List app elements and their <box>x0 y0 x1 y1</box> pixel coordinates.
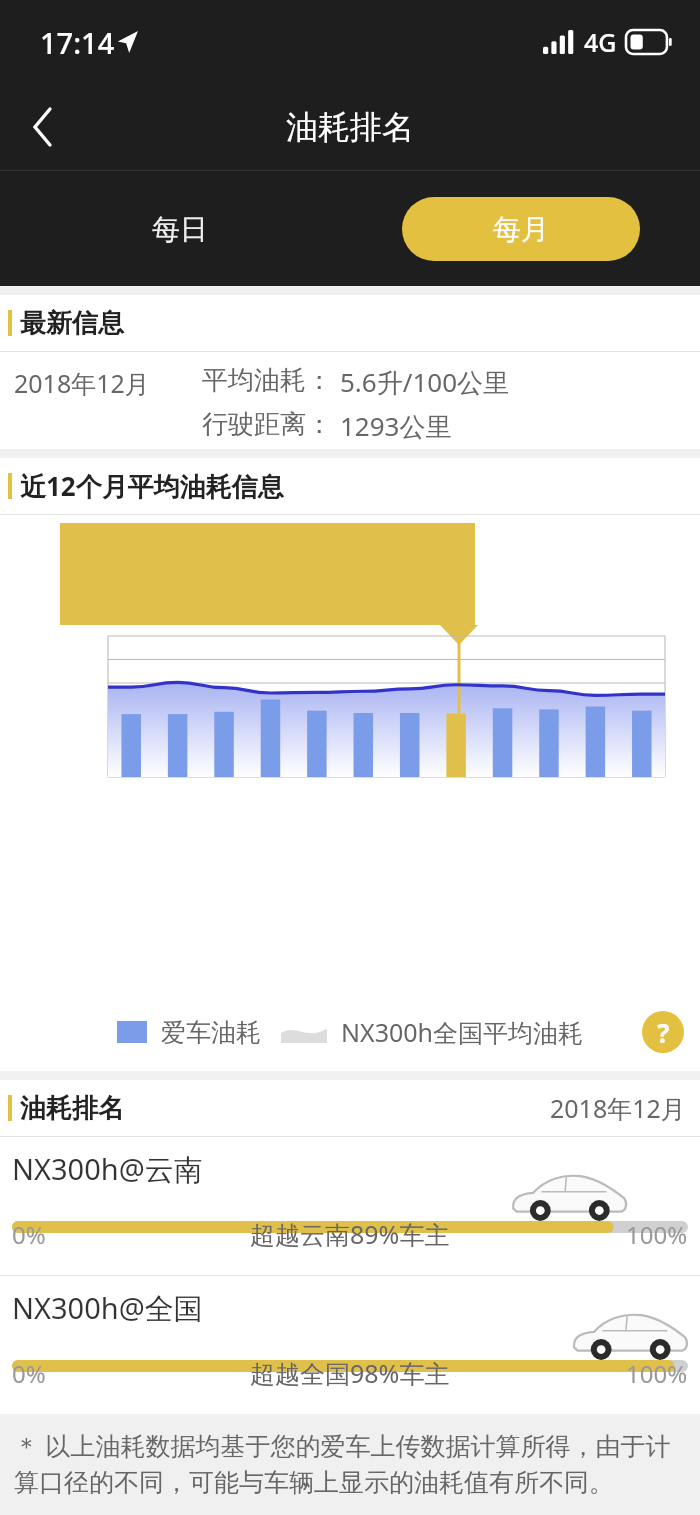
staticText: 最新信息 <box>20 307 124 340</box>
staticText: 1293公里 <box>340 408 452 444</box>
staticText: 0% <box>12 1357 46 1390</box>
staticText: 2018年12月 <box>14 366 150 400</box>
button[interactable]: NX300h@全国 <box>0 1276 700 1414</box>
staticText: 行驶距离： <box>202 408 332 441</box>
staticText: 2018年12月 <box>550 1091 686 1125</box>
staticText: 每月 <box>493 212 549 247</box>
button[interactable]: 每月 <box>402 197 640 261</box>
staticText: 超越全国98%车主 <box>250 1356 450 1390</box>
staticText: 100% <box>626 1357 688 1390</box>
staticText: NX300h全国平均油耗 <box>341 1015 584 1049</box>
staticText: 油耗排名 <box>286 107 414 147</box>
staticText: 每日 <box>152 212 208 247</box>
staticText: ? <box>657 1015 670 1050</box>
button[interactable]: NX300h@云南 <box>0 1137 700 1275</box>
staticText: 平均油耗： <box>202 364 332 397</box>
staticText: NX300h@云南 <box>12 1149 203 1189</box>
staticText: 5.6升/100公里 <box>340 364 510 400</box>
staticText: ＊ 以上油耗数据均基于您的爱车上传数据计算所得，由于计算口径的不同，可能与车辆上… <box>14 1428 686 1497</box>
staticText: NX300h@全国 <box>12 1288 203 1328</box>
staticText: 超越云南89%车主 <box>250 1217 450 1251</box>
staticText: 近12个月平均油耗信息 <box>20 468 284 504</box>
button[interactable]: Back <box>0 84 86 170</box>
staticText: 爱车油耗 <box>161 1017 261 1048</box>
staticText: 4G <box>584 25 617 59</box>
button[interactable]: 每日 <box>90 198 270 260</box>
staticText: 油耗排名 <box>20 1092 124 1125</box>
staticText: 0% <box>12 1218 46 1251</box>
button[interactable]: Help <box>642 1011 684 1053</box>
staticText: 17:14 <box>40 23 115 62</box>
staticText: 100% <box>626 1218 688 1251</box>
